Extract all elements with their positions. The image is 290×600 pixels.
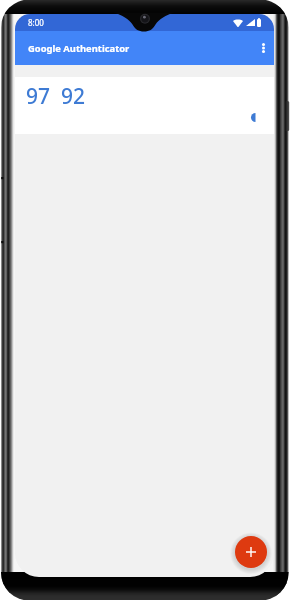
button[interactable]: 97 92 (15, 77, 274, 134)
staticText: 8:00 (28, 17, 44, 28)
staticText: 97 92 (26, 82, 85, 111)
button[interactable]: More options (253, 38, 273, 58)
button[interactable]: Add account (235, 536, 267, 568)
staticText: Google Authenticator (28, 42, 130, 55)
